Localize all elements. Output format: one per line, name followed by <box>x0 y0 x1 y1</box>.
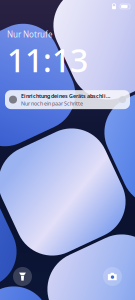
button[interactable]: Einrichtung deines Geräts abschließ… <box>5 90 130 109</box>
staticText: Nur Notrufe <box>7 29 53 40</box>
staticText: 11:13 <box>7 39 88 81</box>
button[interactable]: Camera <box>103 267 122 286</box>
staticText: Nur noch ein paar Schritte <box>21 100 83 107</box>
button[interactable]: Flashlight <box>13 267 32 286</box>
staticText: Einrichtung deines Geräts abschließ… <box>21 92 111 99</box>
